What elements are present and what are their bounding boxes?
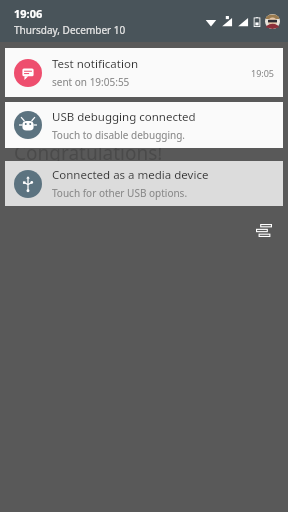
button[interactable]: USB debugging connected: [5, 102, 283, 148]
button[interactable]: Clear all notifications: [250, 216, 278, 244]
staticText: Touch for other USB options.: [52, 186, 188, 200]
staticText: Test notification: [52, 56, 138, 72]
button[interactable]: Test notification: [5, 48, 283, 97]
staticText: 19:05: [251, 67, 275, 79]
staticText: USB debugging connected: [52, 109, 196, 125]
staticText: Touch to disable debugging.: [52, 128, 186, 142]
staticText: Congratulations!: [14, 140, 163, 166]
staticText: without any problems.: [14, 188, 152, 206]
staticText: Thursday, December 10: [14, 23, 126, 37]
staticText: Connected as a media device: [52, 167, 209, 183]
staticText: sent on 19:05:55: [52, 75, 130, 89]
staticText: 19:06: [14, 6, 43, 21]
button[interactable]: Connected as a media device: [5, 161, 283, 206]
